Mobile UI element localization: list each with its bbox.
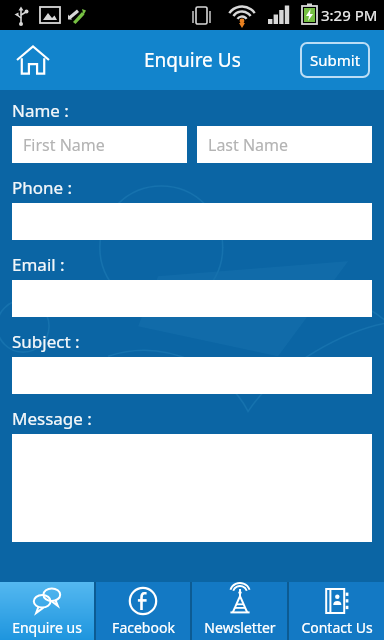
staticText: 3:29 PM	[321, 5, 378, 25]
button[interactable]: Enquire us	[0, 582, 94, 640]
staticText: Contact Us	[301, 618, 373, 637]
staticText: Last Name	[208, 134, 289, 156]
staticText: Message :	[12, 407, 92, 430]
button[interactable]: Facebook	[96, 582, 190, 640]
staticText: Enquire Us	[144, 47, 241, 73]
staticText: Subject :	[12, 330, 80, 353]
button[interactable]: Newsletter	[192, 582, 287, 640]
button[interactable]: Home	[10, 37, 56, 83]
button[interactable]: First Name	[12, 126, 187, 163]
staticText: Name :	[12, 99, 69, 122]
staticText: Phone :	[12, 176, 73, 199]
button[interactable]: Submit	[300, 42, 370, 78]
staticText: Enquire us	[12, 618, 82, 637]
staticText: First Name	[23, 134, 105, 156]
button[interactable]: Contact Us	[289, 582, 384, 640]
staticText: Newsletter	[204, 618, 276, 637]
staticText: Facebook	[112, 618, 175, 637]
button[interactable]: Last Name	[197, 126, 372, 163]
staticText: Submit	[310, 50, 361, 70]
staticText: Email :	[12, 253, 65, 276]
